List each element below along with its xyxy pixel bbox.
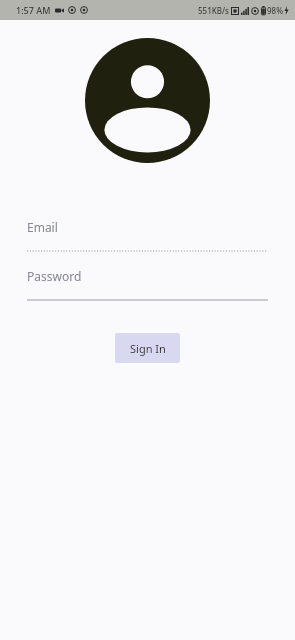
staticText: 1:57 AM	[16, 4, 51, 16]
other: Profile avatar	[85, 38, 210, 163]
staticText: Password	[27, 268, 82, 284]
staticText: 98%	[267, 5, 283, 16]
button[interactable]: Password	[27, 268, 268, 301]
staticText: Email	[27, 219, 58, 235]
button[interactable]: Sign In	[115, 333, 180, 363]
button[interactable]: Email	[27, 219, 268, 252]
staticText: Sign In	[130, 341, 166, 356]
staticText: 551KB/s	[198, 5, 229, 16]
